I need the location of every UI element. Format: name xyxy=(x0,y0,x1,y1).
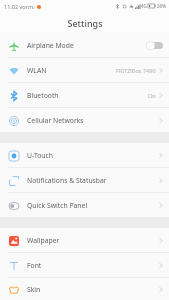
button[interactable]: Wallpaper xyxy=(0,228,169,252)
staticText: Settings xyxy=(67,17,103,29)
staticText: FRITZ!Box 7490 xyxy=(116,67,156,74)
staticText: U-Touch xyxy=(27,151,53,160)
button[interactable]: Skin xyxy=(0,278,169,300)
staticText: 4G xyxy=(141,3,147,9)
other: Airplane Mode toggle xyxy=(146,41,163,50)
button[interactable]: Quick Switch Panel xyxy=(0,193,169,217)
staticText: 26% xyxy=(157,3,166,9)
button[interactable]: Airplane Mode xyxy=(0,33,169,57)
button[interactable]: Font xyxy=(0,253,169,277)
staticText: Bluetooth xyxy=(27,91,59,100)
button[interactable]: Notifications & Statusbar xyxy=(0,168,169,192)
staticText: Cellular Networks xyxy=(27,116,84,125)
staticText: Airplane Mode xyxy=(27,41,74,50)
button[interactable]: Bluetooth xyxy=(0,83,169,107)
staticText: 11:02 vorm. xyxy=(4,3,35,10)
staticText: WLAN xyxy=(27,66,47,75)
staticText: Wallpaper xyxy=(27,236,60,245)
button[interactable]: WLAN xyxy=(0,58,169,82)
button[interactable]: Cellular Networks xyxy=(0,108,169,132)
button[interactable]: U-Touch xyxy=(0,143,169,167)
staticText: Skin xyxy=(27,285,41,294)
staticText: Font xyxy=(27,261,42,270)
staticText: Notifications & Statusbar xyxy=(27,176,107,185)
staticText: Quick Switch Panel xyxy=(27,201,88,210)
staticText: On xyxy=(148,92,156,99)
